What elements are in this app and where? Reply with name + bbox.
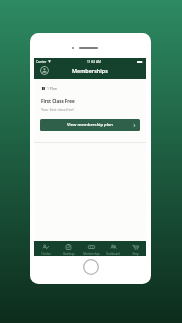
staticText: First Class Free <box>41 98 75 104</box>
staticText: Checkin <box>41 252 51 256</box>
staticText: Shop <box>132 252 139 256</box>
button[interactable]: View membership plan <box>40 119 140 131</box>
staticText: Your first class free! <box>41 107 74 112</box>
button[interactable]: Bookings <box>57 241 80 256</box>
button[interactable]: Dashboard <box>102 241 124 256</box>
staticText: Carrier <box>36 60 47 64</box>
staticText: Bookings <box>63 252 75 256</box>
staticText: Memberships <box>83 252 100 256</box>
button[interactable]: Profile <box>40 66 49 75</box>
staticText: Memberships <box>72 67 108 74</box>
button[interactable]: Checkin <box>34 241 57 256</box>
staticText: Dashboard <box>106 252 120 256</box>
staticText: 11:53 AM <box>87 60 101 64</box>
staticText: 1 Plan <box>47 86 57 91</box>
button[interactable]: Shop <box>124 241 146 256</box>
button[interactable]: Memberships <box>80 241 102 256</box>
staticText: View membership plan <box>67 122 113 128</box>
